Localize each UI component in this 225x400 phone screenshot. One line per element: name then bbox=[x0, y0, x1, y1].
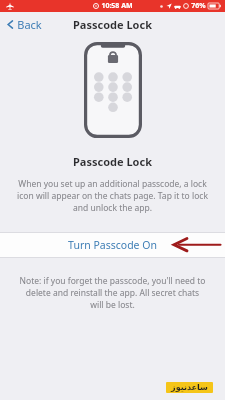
other: Passcode lock illustration bbox=[84, 42, 142, 138]
staticText: Passcode Lock bbox=[73, 17, 152, 32]
button[interactable]: Back bbox=[0, 14, 50, 35]
staticText: When you set up an additional passcode, … bbox=[17, 178, 208, 214]
staticText: Back bbox=[17, 17, 42, 32]
staticText: 76% bbox=[191, 1, 206, 11]
button[interactable]: Turn Passcode On bbox=[0, 233, 225, 257]
staticText: Turn Passcode On bbox=[68, 238, 157, 252]
staticText: 10:58 AM bbox=[101, 1, 133, 11]
staticText: ساعدنیوز bbox=[171, 383, 208, 392]
staticText: Passcode Lock bbox=[73, 154, 152, 169]
staticText: Note: if you forget the passcode, you'll… bbox=[19, 275, 206, 311]
